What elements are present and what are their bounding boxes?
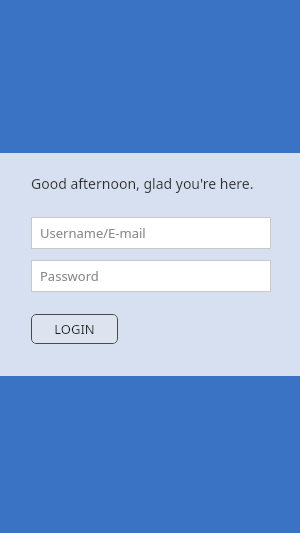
staticText: Good afternoon, glad you're here. — [31, 174, 254, 193]
staticText: Username/E-mail — [40, 224, 146, 242]
button[interactable]: Password — [31, 260, 271, 292]
button[interactable]: LOGIN — [31, 314, 118, 344]
staticText: Password — [40, 267, 99, 285]
button[interactable]: Username/E-mail — [31, 217, 271, 249]
staticText: LOGIN — [54, 320, 95, 338]
